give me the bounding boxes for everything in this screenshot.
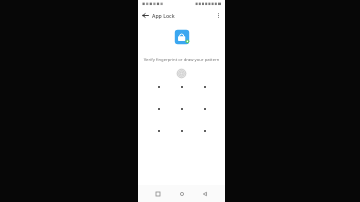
button[interactable]: Recent apps — [152, 188, 164, 200]
button[interactable]: Back — [139, 9, 152, 22]
button[interactable]: More options — [212, 9, 225, 22]
button[interactable]: Back — [199, 188, 211, 200]
staticText: Verify fingerprint or draw your pattern — [138, 57, 225, 63]
button[interactable]: Home — [176, 188, 188, 200]
staticText: App Lock — [152, 12, 175, 19]
button[interactable]: Pattern grid — [159, 87, 205, 131]
